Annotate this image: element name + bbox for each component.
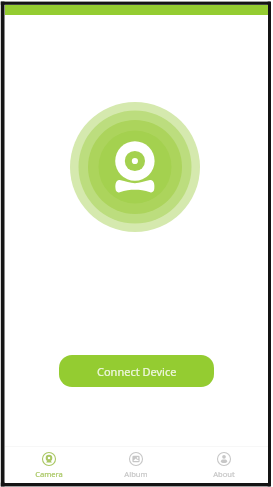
staticText: About [213, 469, 235, 479]
button[interactable]: Album [92, 447, 180, 483]
staticText: Camera [35, 469, 63, 479]
button[interactable]: About [180, 447, 268, 483]
button[interactable]: Connect Device [59, 355, 214, 387]
button[interactable]: Camera [5, 447, 92, 483]
staticText: Album [124, 469, 148, 479]
staticText: Connect Device [97, 364, 177, 379]
